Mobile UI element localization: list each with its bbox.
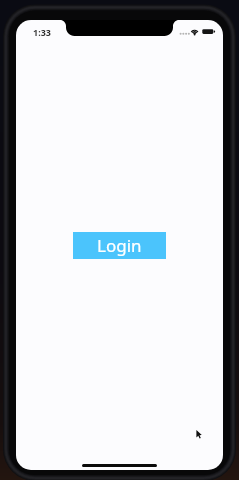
staticText: 1:33 xyxy=(33,26,51,38)
button[interactable]: Login xyxy=(73,232,166,259)
staticText: Login xyxy=(97,234,142,257)
